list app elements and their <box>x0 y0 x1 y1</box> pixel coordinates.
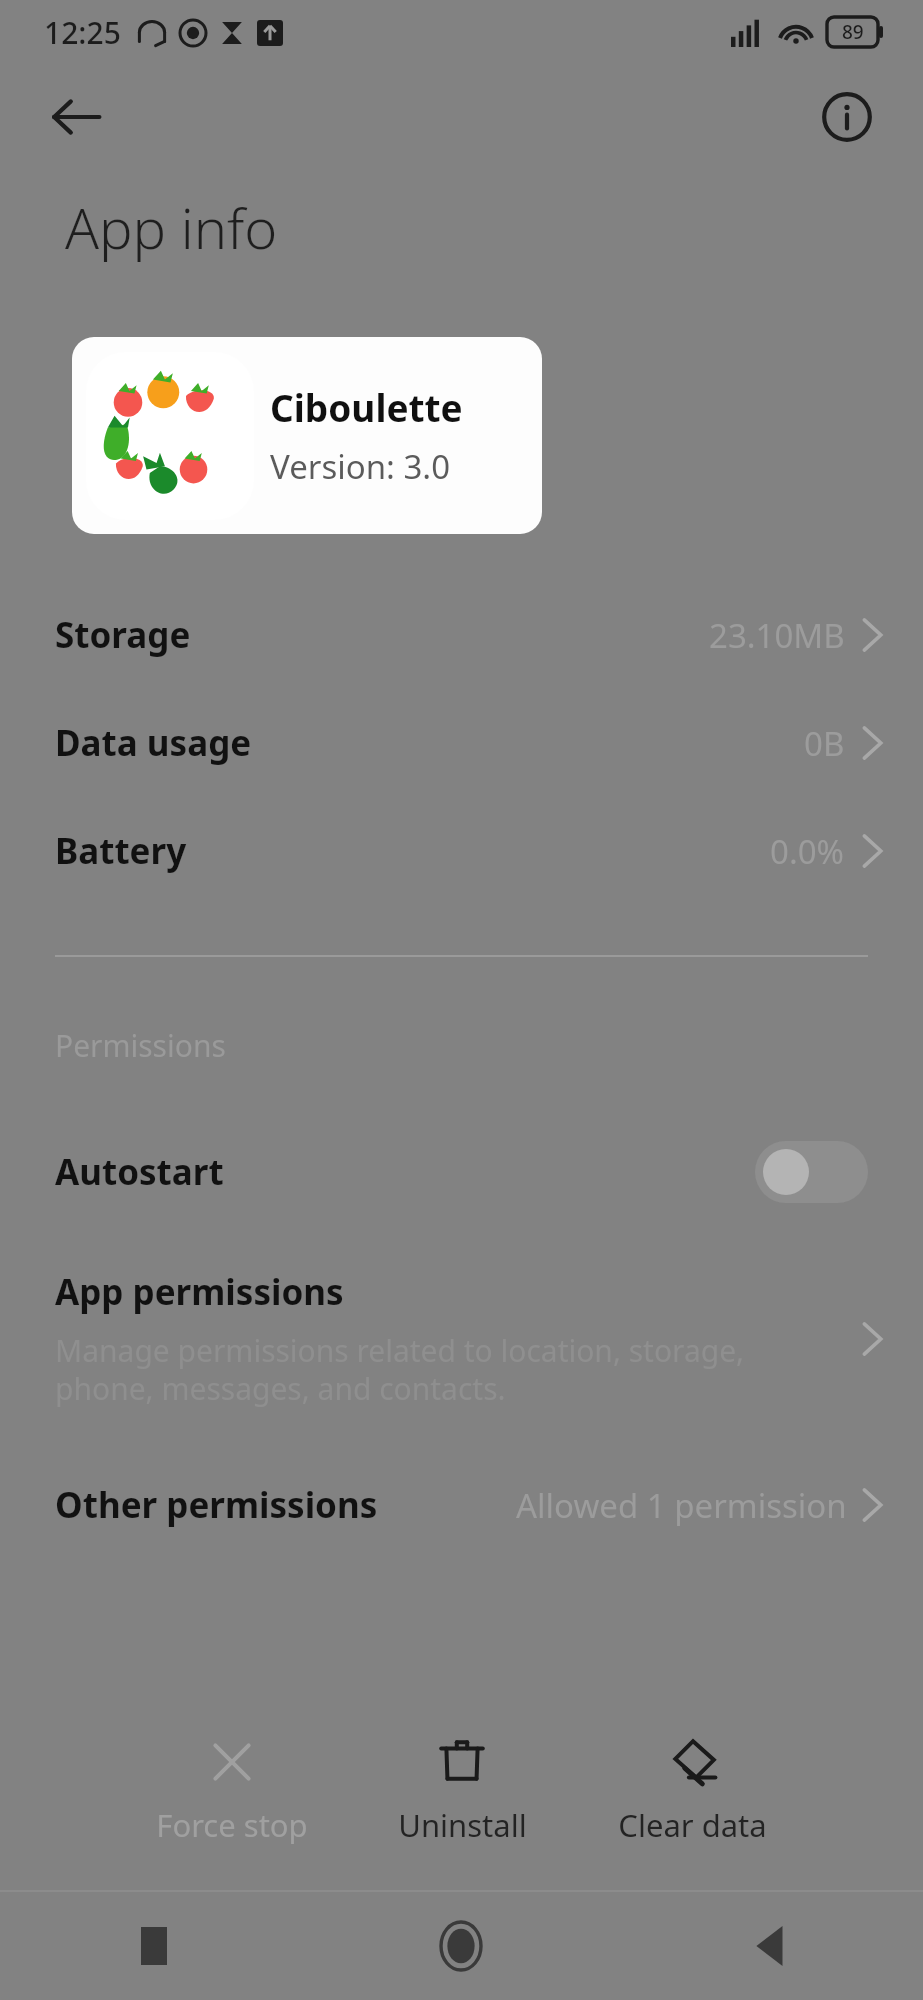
button[interactable]: Force stop <box>137 1726 327 1856</box>
staticText: Data usage <box>55 719 252 767</box>
staticText: 0B <box>804 721 845 766</box>
staticText: App permissions <box>55 1268 344 1316</box>
button[interactable]: Other permissions <box>0 1459 923 1551</box>
staticText: Autostart <box>55 1148 224 1196</box>
button[interactable]: Uninstall <box>367 1726 557 1856</box>
button[interactable]: Autostart <box>0 1118 923 1226</box>
button[interactable]: Battery <box>0 797 923 905</box>
staticText: Manage permissions related to location, … <box>55 1330 745 1409</box>
staticText: Permissions <box>55 1025 226 1066</box>
button[interactable]: Recent apps <box>0 1892 307 2000</box>
staticText: 0.0% <box>770 829 845 874</box>
staticText: 23.10MB <box>709 613 845 658</box>
staticText: Other permissions <box>55 1481 378 1529</box>
staticText: Version: 3.0 <box>270 444 451 489</box>
staticText: Uninstall <box>398 1804 527 1846</box>
staticText: Force stop <box>156 1804 308 1846</box>
button[interactable]: App details info <box>813 83 881 151</box>
button[interactable]: Storage <box>0 581 923 689</box>
staticText: Ciboulette <box>270 382 463 432</box>
button[interactable]: Home <box>307 1892 615 2000</box>
button[interactable]: Ciboulette <box>72 337 542 534</box>
staticText: Allowed 1 permission <box>516 1483 847 1528</box>
button[interactable]: Back <box>615 1892 923 2000</box>
button[interactable]: Back <box>42 83 110 151</box>
staticText: App info <box>65 189 278 265</box>
staticText: 89 <box>842 19 864 45</box>
button[interactable]: App permissions <box>0 1264 923 1413</box>
button[interactable]: Data usage <box>0 689 923 797</box>
staticText: Battery <box>55 827 187 875</box>
button[interactable]: Clear data <box>597 1726 787 1856</box>
staticText: Storage <box>55 611 191 659</box>
button[interactable]: Autostart toggle, off <box>755 1141 868 1203</box>
staticText: 12:25 <box>44 12 121 53</box>
staticText: Clear data <box>618 1804 767 1846</box>
